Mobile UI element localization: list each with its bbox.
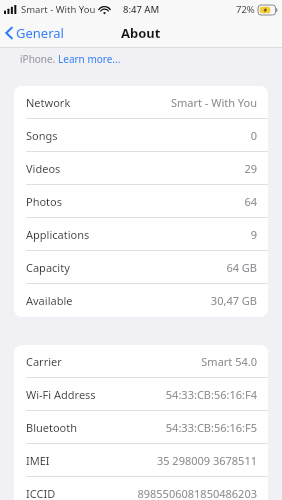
staticText: 54:33:CB:56:16:F4 [165, 387, 257, 402]
staticText: 35 298009 3678511 [156, 453, 257, 468]
staticText: Capacity [26, 260, 70, 275]
button[interactable]: ICCID [14, 477, 268, 500]
staticText: 9 [250, 227, 257, 242]
staticText: 30,47 GB [210, 293, 257, 308]
staticText: Network [26, 95, 71, 110]
button[interactable]: Wi-Fi Address [14, 378, 268, 411]
staticText: Smart 54.0 [201, 354, 257, 369]
button[interactable]: Videos [14, 152, 268, 185]
staticText: Videos [26, 161, 61, 176]
button[interactable]: Bluetooth [14, 411, 268, 444]
staticText: About [121, 24, 161, 42]
staticText: Wi-Fi Address [26, 387, 96, 402]
staticText: 8985506081850486203 [137, 486, 257, 500]
staticText: 64 GB [226, 260, 257, 275]
staticText: IMEI [26, 453, 50, 468]
staticText: 64 [244, 194, 257, 209]
button[interactable]: General [0, 20, 72, 46]
staticText: 54:33:CB:56:16:F5 [165, 420, 257, 435]
staticText: 29 [244, 161, 257, 176]
staticText: Available [26, 293, 73, 308]
staticText: Photos [26, 194, 63, 209]
staticText: Smart - With You [21, 3, 96, 16]
button[interactable]: Carrier [14, 345, 268, 378]
staticText: Applications [26, 227, 90, 242]
staticText: iPhone. [20, 52, 58, 66]
staticText: Bluetooth [26, 420, 78, 435]
staticText: 0 [250, 128, 257, 143]
staticText: Smart - With You [170, 95, 257, 110]
staticText: Carrier [26, 354, 62, 369]
button[interactable]: Applications [14, 218, 268, 251]
button[interactable]: Photos [14, 185, 268, 218]
staticText: General [16, 24, 64, 42]
staticText: 72% [236, 3, 255, 16]
button[interactable]: Capacity [14, 251, 268, 284]
staticText: Songs [26, 128, 58, 143]
button[interactable]: Network [14, 86, 268, 119]
staticText: ICCID [26, 486, 56, 500]
staticText: 8:47 AM [123, 3, 160, 16]
button[interactable]: Songs [14, 119, 268, 152]
button[interactable]: Available [14, 284, 268, 317]
button[interactable]: Learn more... [58, 52, 121, 66]
button[interactable]: IMEI [14, 444, 268, 477]
